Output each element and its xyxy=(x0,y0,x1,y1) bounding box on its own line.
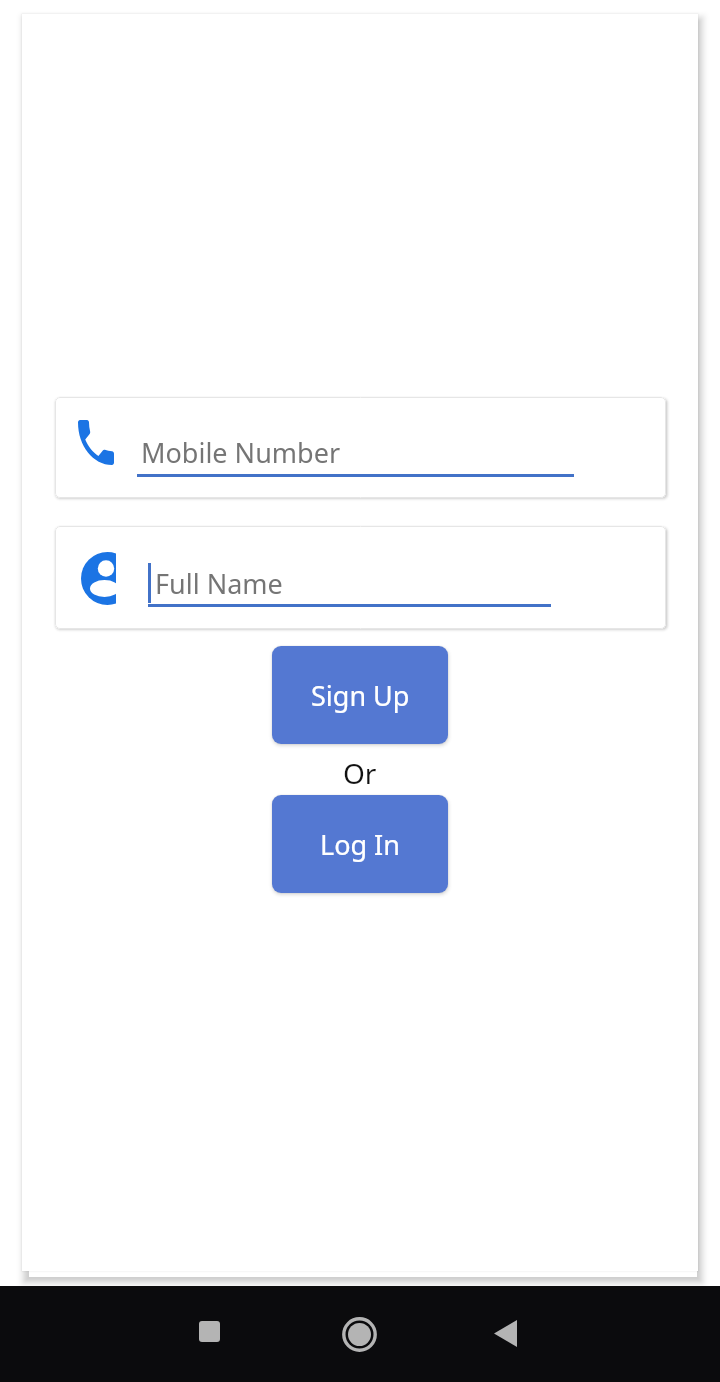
staticText: Sign Up xyxy=(311,677,410,714)
button[interactable] xyxy=(494,1320,517,1347)
button[interactable] xyxy=(342,1317,377,1352)
button[interactable] xyxy=(199,1321,220,1342)
staticText: Log In xyxy=(320,826,400,863)
button[interactable]: Mobile Number xyxy=(55,397,666,498)
button[interactable]: Log In xyxy=(272,795,448,893)
staticText: Full Name xyxy=(155,565,283,602)
staticText: Or xyxy=(343,754,377,792)
button[interactable]: Sign Up xyxy=(272,646,448,744)
button[interactable]: Full Name xyxy=(55,526,666,629)
staticText: Mobile Number xyxy=(141,434,341,471)
